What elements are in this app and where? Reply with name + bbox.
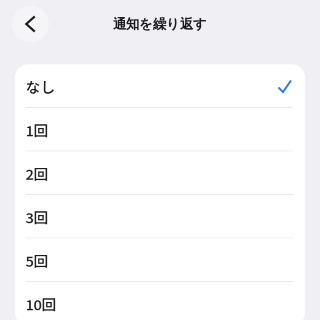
- button[interactable]: 2回: [15, 151, 305, 195]
- staticText: 通知を繰り返す: [113, 16, 207, 32]
- button[interactable]: 5回: [15, 238, 305, 282]
- staticText: 5回: [25, 250, 48, 271]
- staticText: 3回: [25, 206, 48, 227]
- staticText: 1回: [25, 119, 48, 140]
- staticText: 10回: [25, 293, 56, 314]
- button[interactable]: 3回: [15, 195, 305, 238]
- button[interactable]: 1回: [15, 108, 305, 151]
- staticText: 2回: [25, 163, 48, 184]
- button[interactable]: 10回: [15, 282, 305, 320]
- button[interactable]: Back: [12, 5, 49, 42]
- staticText: なし: [25, 76, 55, 97]
- button[interactable]: なし: [15, 64, 305, 108]
